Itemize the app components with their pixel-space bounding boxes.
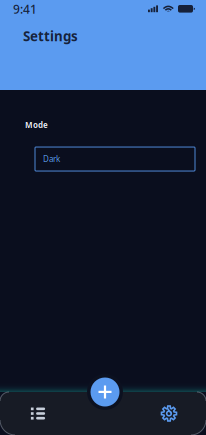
staticText: Mode xyxy=(25,120,48,130)
button[interactable]: Add xyxy=(86,373,124,411)
staticText: Settings xyxy=(23,27,78,45)
button[interactable]: Settings xyxy=(132,392,206,435)
staticText: Dark xyxy=(43,154,60,164)
staticText: 9:41 xyxy=(13,1,37,17)
button[interactable]: List xyxy=(0,392,76,435)
button[interactable]: Dark xyxy=(35,147,195,171)
